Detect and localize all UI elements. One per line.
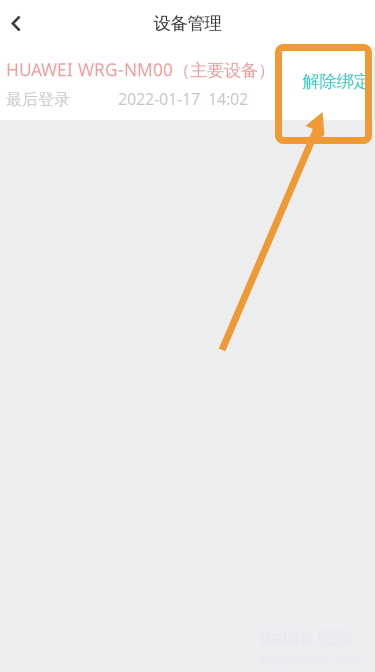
- staticText: 设备管理: [153, 13, 221, 34]
- button[interactable]: 返回: [0, 0, 32, 47]
- button[interactable]: 解除绑定: [296, 47, 375, 116]
- staticText: 最后登录 2022-01-17 14:02: [6, 88, 248, 109]
- staticText: 解除绑定: [302, 71, 370, 92]
- staticText: HUAWEI WRG-NM00（主要设备）: [6, 58, 275, 81]
